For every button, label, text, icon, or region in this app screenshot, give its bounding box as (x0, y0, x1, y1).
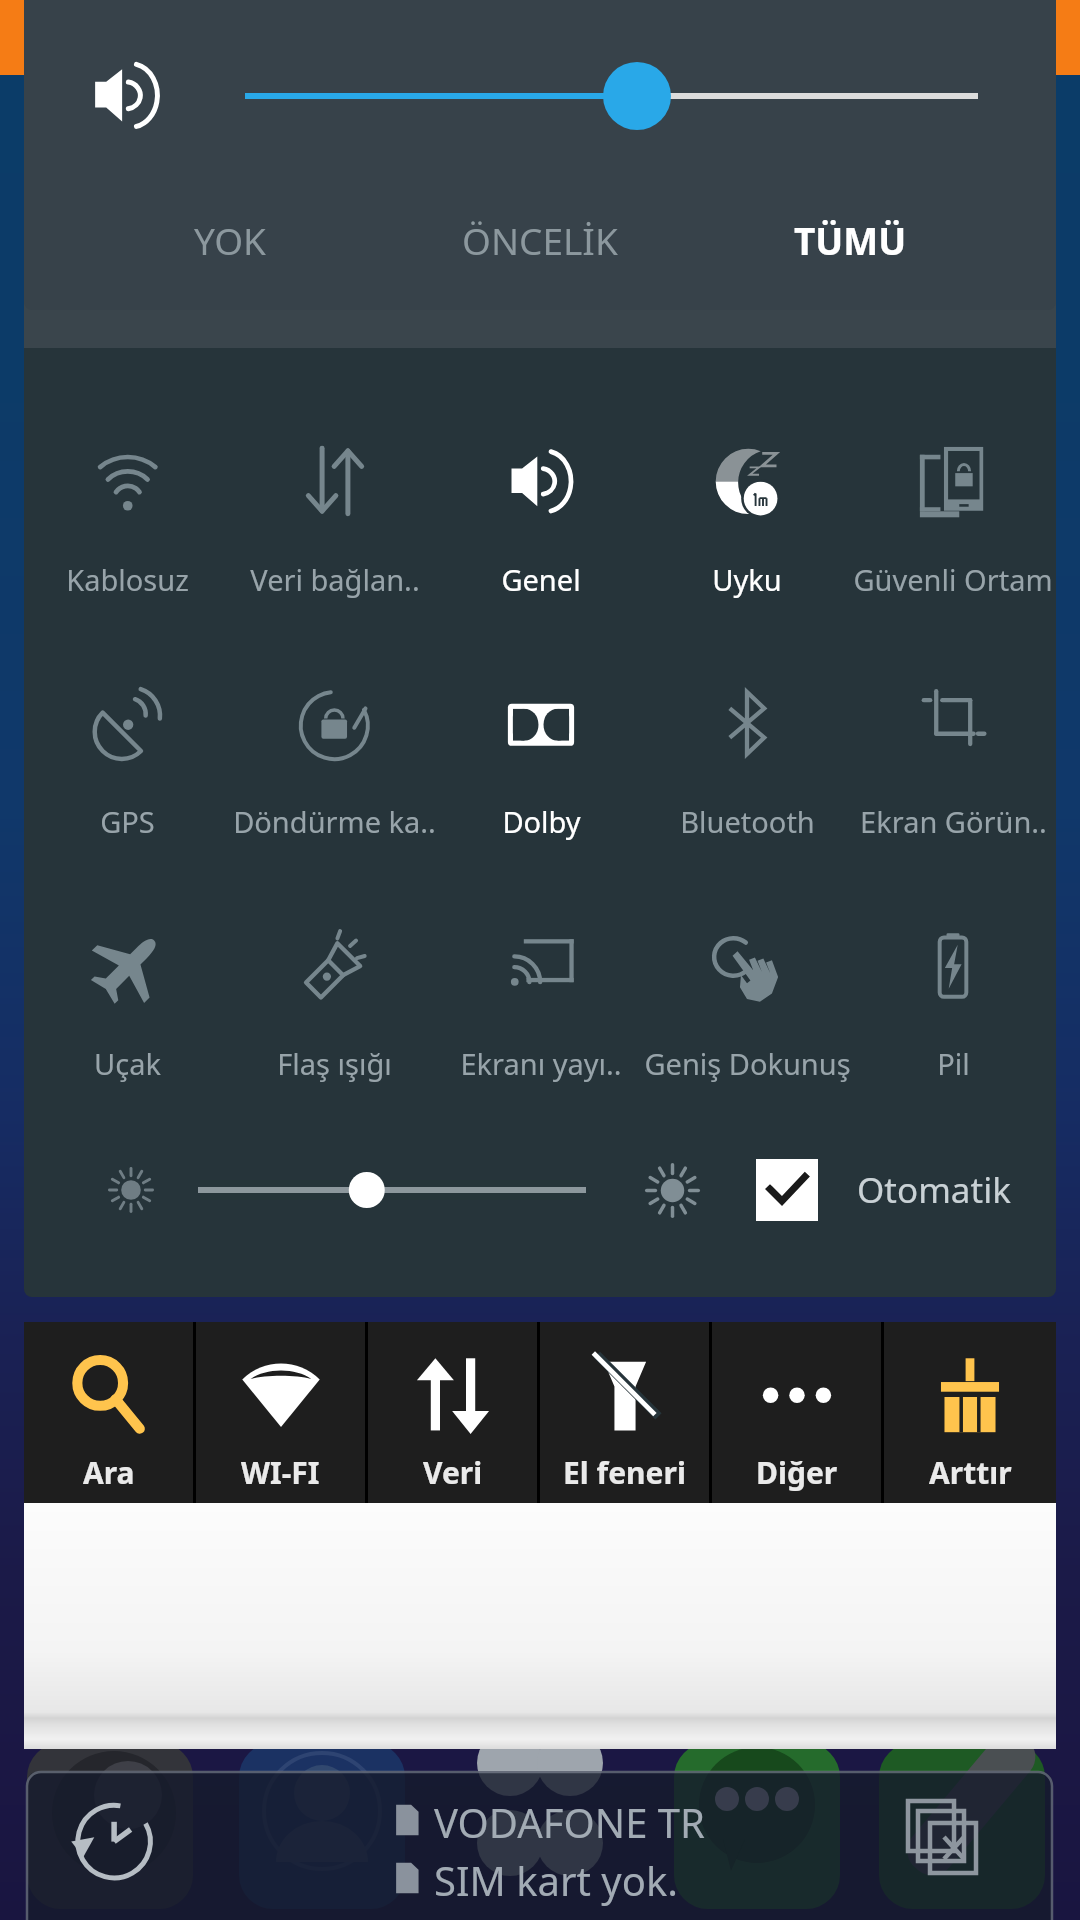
button[interactable]: Güvenli Ortam (850, 388, 1056, 630)
staticText: Otomatik (857, 1166, 1011, 1214)
button[interactable]: Ekranı yayı.. (438, 872, 644, 1114)
staticText: Veri bağlan.. (250, 560, 420, 599)
staticText: TÜMÜ (794, 215, 907, 265)
staticText: Ekranı yayı.. (460, 1044, 622, 1083)
staticText: Güvenli Ortam (853, 560, 1053, 599)
staticText: Ekran Görün.. (860, 802, 1047, 841)
button[interactable]: Dolby (438, 630, 644, 872)
button[interactable]: Volume slider (245, 59, 978, 133)
button[interactable]: Arttır (884, 1322, 1056, 1503)
staticText: Ara (83, 1452, 135, 1493)
button[interactable]: Bluetooth (644, 630, 850, 872)
button[interactable]: Kablosuz (24, 388, 231, 630)
button[interactable]: ÖNCELİK (400, 192, 680, 288)
button[interactable] (26, 1771, 1053, 1920)
button[interactable]: Genel (438, 388, 644, 630)
button[interactable]: YOK (90, 192, 370, 288)
staticText: Veri (423, 1452, 483, 1493)
staticText: Geniş Dokunuş (644, 1044, 850, 1083)
staticText: Kablosuz (66, 560, 189, 599)
button[interactable]: Ekran Görün.. (850, 630, 1056, 872)
staticText: Dolby (502, 802, 581, 841)
button[interactable]: Pil (850, 872, 1056, 1114)
button[interactable]: Otomatik (756, 1135, 1046, 1245)
staticText: Arttır (929, 1452, 1012, 1493)
button[interactable]: Döndürme ka.. (231, 630, 438, 872)
button[interactable]: WI-FI (196, 1322, 365, 1503)
staticText: Döndürme ka.. (233, 802, 436, 841)
staticText: El feneri (563, 1452, 686, 1493)
button[interactable]: Brightness (198, 1150, 586, 1230)
staticText: Uçak (94, 1044, 161, 1083)
staticText: Flaş ışığı (277, 1044, 392, 1083)
button[interactable]: GPS (24, 630, 231, 872)
button[interactable]: Diğer (712, 1322, 881, 1503)
button[interactable]: Flaş ışığı (231, 872, 438, 1114)
staticText: Uyku (712, 560, 782, 599)
staticText: YOK (194, 215, 267, 265)
button[interactable]: Ara (24, 1322, 193, 1503)
button[interactable]: Uyku (644, 388, 850, 630)
button[interactable]: Volume (81, 50, 171, 140)
staticText: SIM kart yok. (434, 1853, 679, 1907)
staticText: GPS (100, 802, 155, 841)
staticText: Genel (501, 560, 581, 599)
staticText: VODAFONE TR (434, 1795, 705, 1849)
staticText: Bluetooth (680, 802, 815, 841)
staticText: ÖNCELİK (462, 215, 618, 265)
button[interactable]: El feneri (540, 1322, 709, 1503)
staticText: WI-FI (241, 1452, 320, 1493)
button[interactable]: Veri (368, 1322, 537, 1503)
staticText: Diğer (756, 1452, 838, 1493)
button[interactable]: Geniş Dokunuş (644, 872, 850, 1114)
button[interactable]: TÜMÜ (710, 192, 990, 288)
staticText: Pil (937, 1044, 970, 1083)
button[interactable]: Veri bağlan.. (231, 388, 438, 630)
button[interactable]: Uçak (24, 872, 231, 1114)
